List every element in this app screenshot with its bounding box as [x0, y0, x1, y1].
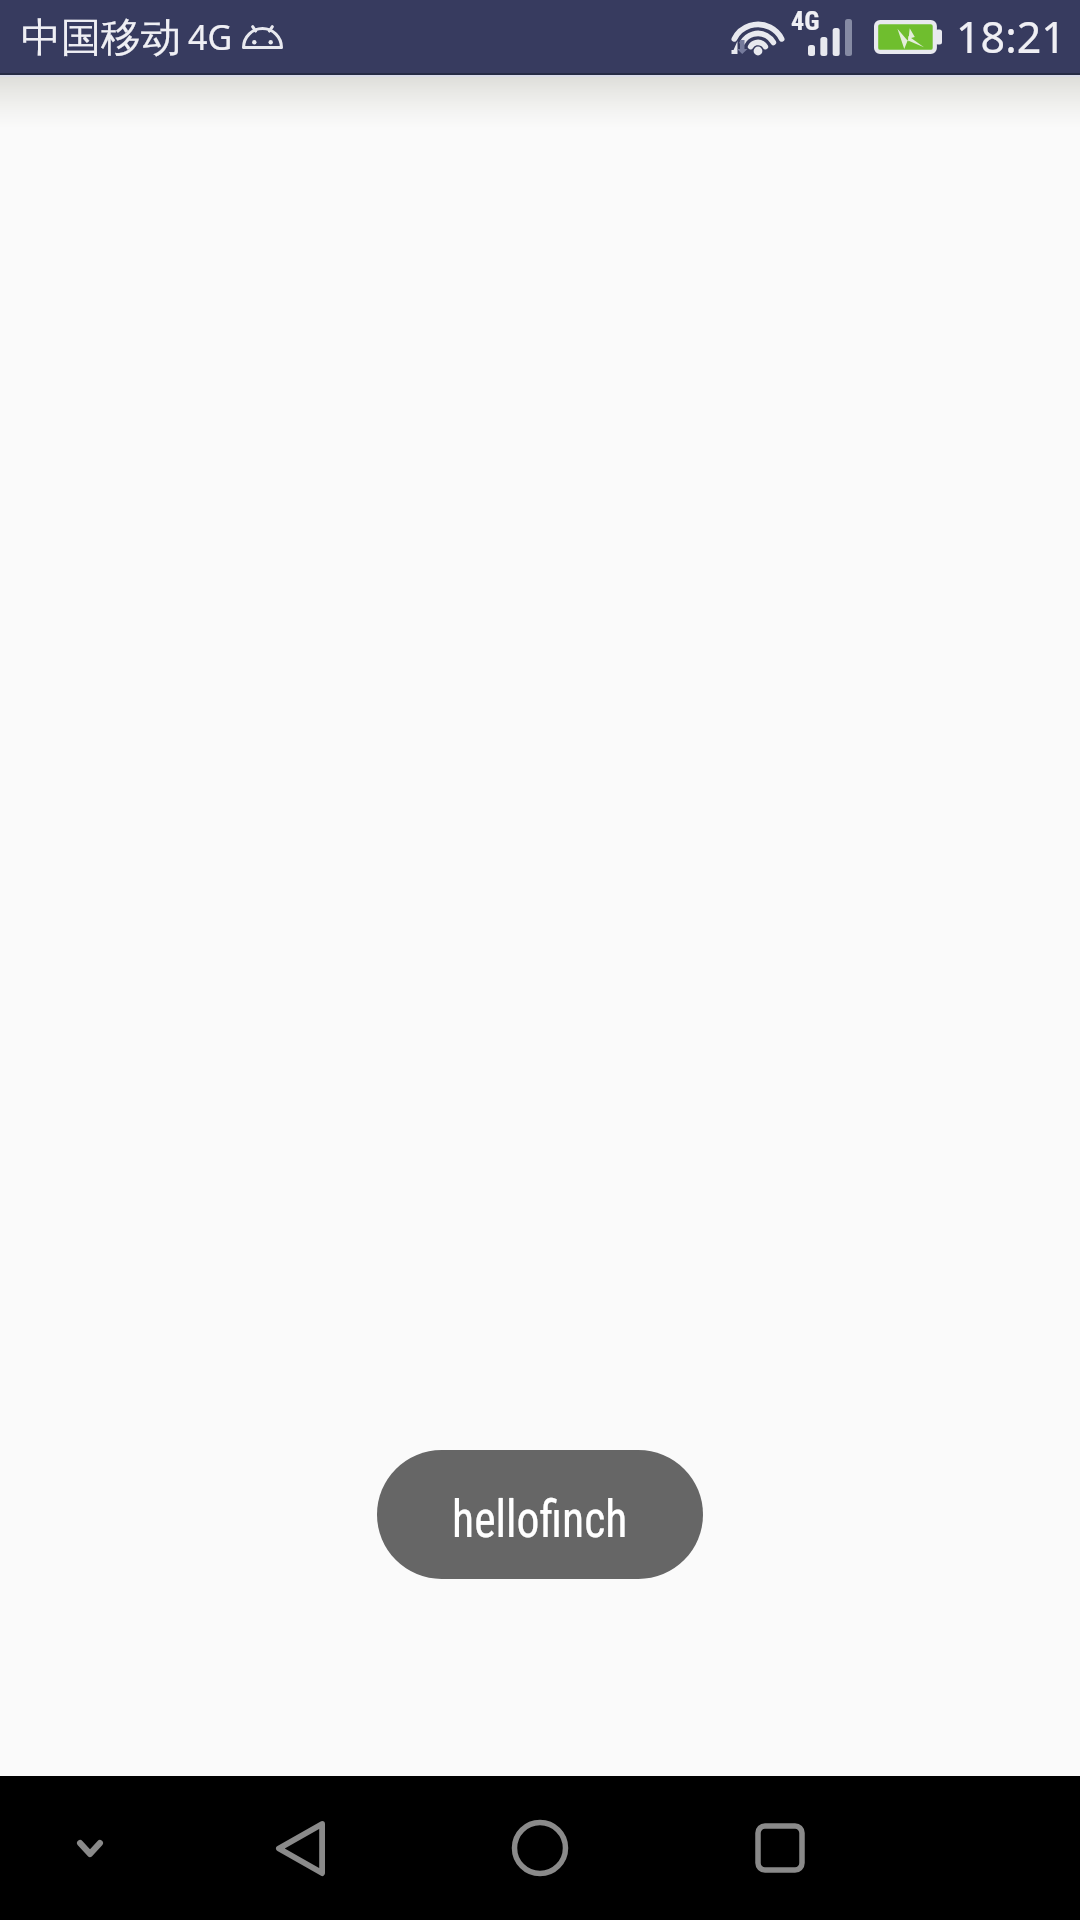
staticText: 中国移动 — [21, 12, 181, 62]
button[interactable]: Hide keyboard — [30, 1776, 150, 1920]
button[interactable]: Recent apps — [720, 1776, 840, 1920]
staticText: 18:21 — [956, 7, 1066, 66]
button[interactable]: hellofinch — [377, 1450, 703, 1579]
button[interactable]: Home — [480, 1776, 600, 1920]
staticText: 4G — [791, 6, 820, 36]
staticText: 4G — [188, 14, 233, 60]
staticText: hellofinch — [452, 1489, 628, 1549]
button[interactable]: Back — [240, 1776, 360, 1920]
